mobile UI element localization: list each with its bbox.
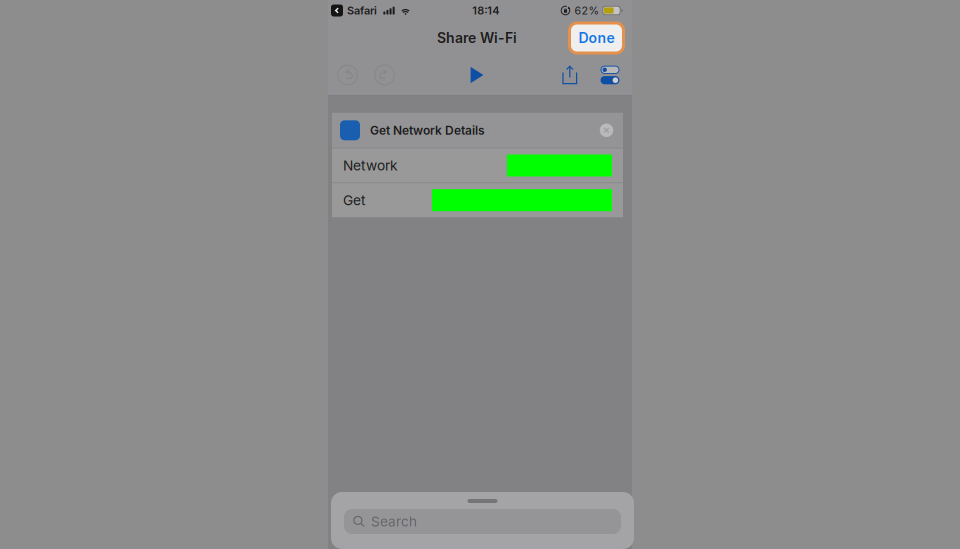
- button[interactable]: Run shortcut: [463, 55, 491, 95]
- staticText: Get Network Details: [370, 123, 485, 137]
- button[interactable]: Share: [557, 55, 583, 95]
- staticText: 18:14: [472, 4, 499, 17]
- button[interactable]: Search: [344, 509, 621, 534]
- staticText: Safari: [347, 4, 377, 17]
- staticText: Search: [371, 513, 417, 530]
- button[interactable]: Shortcut details: [597, 55, 623, 95]
- staticText: Get: [343, 192, 365, 208]
- button[interactable]: Safari: [331, 4, 377, 17]
- button[interactable]: Remove action: [598, 122, 615, 139]
- staticText: Share Wi-Fi: [437, 29, 517, 46]
- staticText: Network: [343, 157, 398, 174]
- button[interactable]: Done: [568, 21, 625, 54]
- staticText: Done: [578, 29, 614, 46]
- staticText: 62%: [574, 4, 598, 17]
